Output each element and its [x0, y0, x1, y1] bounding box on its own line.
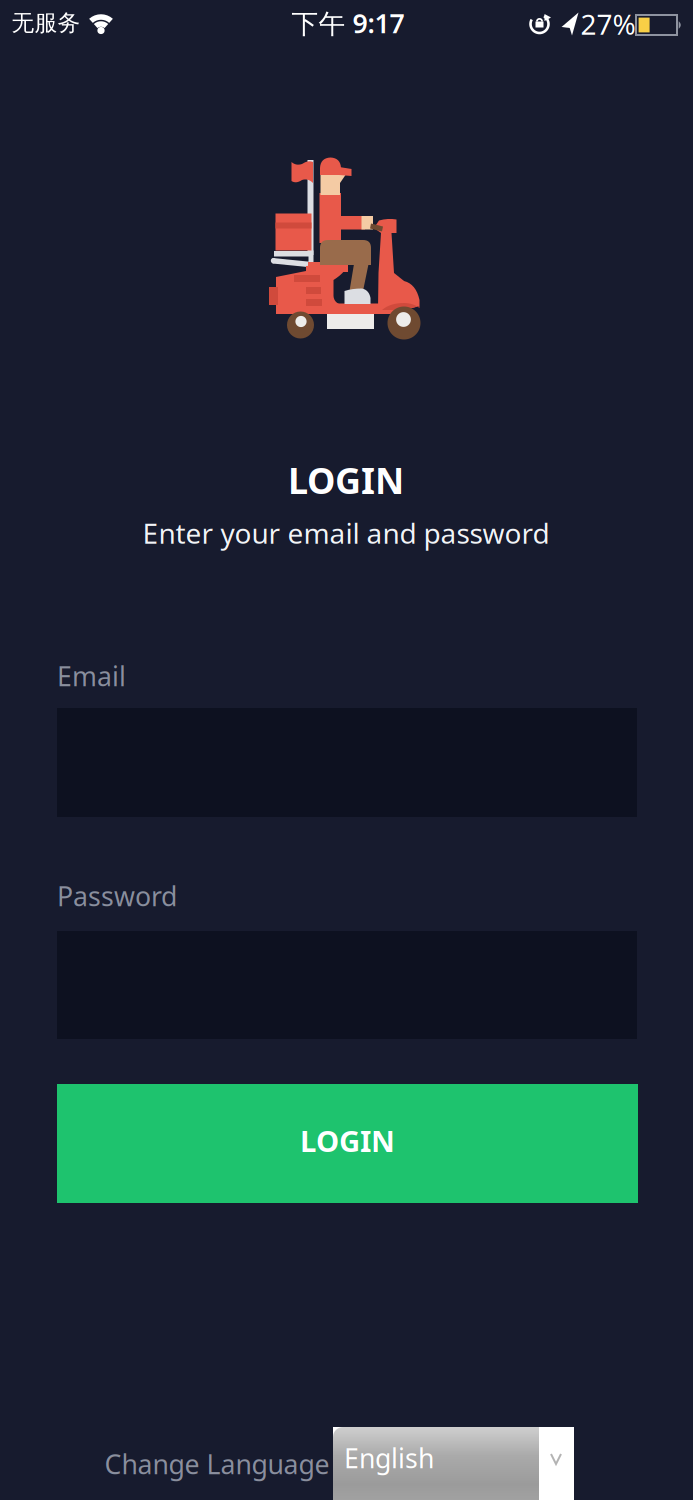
- staticText: 下午 9:17: [291, 5, 404, 41]
- staticText: 无服务: [11, 9, 80, 37]
- button[interactable]: LOGIN: [57, 1084, 638, 1203]
- staticText: LOGIN: [288, 456, 404, 504]
- staticText: 27%: [580, 5, 635, 43]
- staticText: LOGIN: [300, 1121, 395, 1160]
- staticText: Password: [57, 878, 177, 914]
- staticText: English: [344, 1440, 434, 1476]
- staticText: Change Language: [104, 1446, 329, 1482]
- staticText: Enter your email and password: [142, 514, 549, 552]
- staticText: Email: [57, 658, 126, 694]
- button[interactable]: Change Language: [333, 1427, 574, 1500]
